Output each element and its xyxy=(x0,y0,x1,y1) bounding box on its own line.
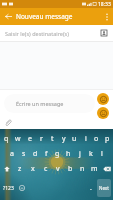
staticText: z xyxy=(18,164,22,174)
button[interactable]: Backspace xyxy=(100,161,113,176)
button[interactable]: j xyxy=(74,146,85,161)
button[interactable]: s xyxy=(18,146,30,161)
button[interactable]: u xyxy=(69,131,80,146)
staticText: y xyxy=(62,134,66,144)
button[interactable]: Next xyxy=(97,179,111,197)
button[interactable]: Écrire un message xyxy=(4,94,95,113)
button[interactable]: Add emoji xyxy=(97,93,109,105)
staticText: i xyxy=(85,134,87,144)
staticText: . xyxy=(90,183,92,193)
staticText: Next xyxy=(99,185,109,191)
button[interactable]: q xyxy=(0,131,12,146)
button[interactable]: f xyxy=(41,146,52,161)
staticText: q xyxy=(4,134,9,144)
staticText: u xyxy=(72,134,77,144)
button[interactable]: Attach file xyxy=(2,117,14,129)
staticText: m xyxy=(91,164,98,174)
button[interactable]: k xyxy=(85,146,96,161)
staticText: r xyxy=(40,134,43,144)
button[interactable]: y xyxy=(58,131,69,146)
staticText: f xyxy=(45,149,48,159)
button[interactable]: r xyxy=(36,131,47,146)
button[interactable]: w xyxy=(12,131,24,146)
staticText: j xyxy=(79,149,81,159)
button[interactable]: a xyxy=(6,146,18,161)
staticText: w xyxy=(15,134,21,144)
button[interactable]: m xyxy=(88,161,100,176)
staticText: v xyxy=(56,164,60,174)
button[interactable]: n xyxy=(76,161,88,176)
button[interactable]: Choose contacts xyxy=(98,27,110,39)
button[interactable]: Back xyxy=(0,8,16,25)
button[interactable]: o xyxy=(91,131,102,146)
button[interactable]: d xyxy=(30,146,41,161)
button[interactable]: i xyxy=(80,131,91,146)
staticText: k xyxy=(89,149,93,159)
staticText: d xyxy=(33,149,38,159)
button[interactable]: Send message xyxy=(97,107,109,119)
button[interactable]: ?123 xyxy=(0,176,17,200)
staticText: ?123 xyxy=(3,185,14,192)
button[interactable]: Emoji keyboard xyxy=(17,176,26,200)
staticText: t xyxy=(51,134,54,144)
staticText: h xyxy=(66,149,71,159)
staticText: p xyxy=(105,134,110,144)
button[interactable]: l xyxy=(96,146,107,161)
button[interactable]: h xyxy=(63,146,74,161)
button[interactable]: Shift xyxy=(0,161,13,176)
staticText: e xyxy=(28,134,32,144)
button[interactable]: . xyxy=(86,176,95,200)
button[interactable]: v xyxy=(52,161,64,176)
staticText: b xyxy=(68,164,73,174)
staticText: l xyxy=(101,149,103,159)
staticText: Saisir le(s) destinataire(s) xyxy=(5,30,69,37)
staticText: Écrire un message xyxy=(16,100,64,107)
staticText: c xyxy=(44,164,48,174)
button[interactable]: Space xyxy=(26,176,86,200)
staticText: a xyxy=(10,149,14,159)
button[interactable]: p xyxy=(102,131,113,146)
staticText: g xyxy=(55,149,60,159)
button[interactable]: e xyxy=(24,131,36,146)
button[interactable]: c xyxy=(39,161,52,176)
staticText: o xyxy=(94,134,99,144)
button[interactable]: g xyxy=(52,146,63,161)
staticText: x xyxy=(31,164,35,174)
button[interactable]: x xyxy=(26,161,39,176)
button[interactable]: z xyxy=(13,161,26,176)
staticText: s xyxy=(22,149,26,159)
button[interactable]: t xyxy=(47,131,58,146)
staticText: n xyxy=(80,164,85,174)
button[interactable]: b xyxy=(64,161,76,176)
button[interactable]: More options xyxy=(101,8,113,25)
staticText: Nouveau message xyxy=(16,12,73,21)
staticText: 18:33 xyxy=(98,1,111,8)
